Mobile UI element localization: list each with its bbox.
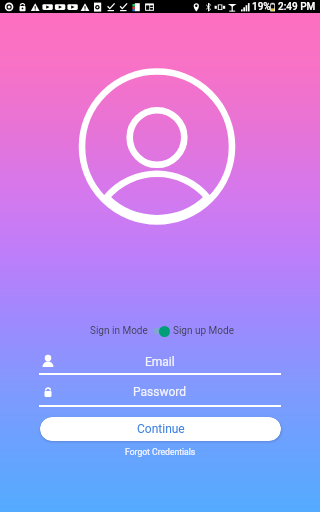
staticText: Email (145, 355, 175, 369)
other: Profile avatar (79, 69, 235, 225)
button[interactable]: Sign up mode toggle (152, 324, 172, 338)
staticText: Continue (137, 422, 185, 436)
staticText: Sign in Mode (90, 325, 148, 337)
other: Email (42, 354, 54, 366)
staticText: Password (133, 385, 187, 399)
button[interactable]: Continue (40, 417, 281, 441)
staticText: 2:49 PM (278, 1, 316, 13)
staticText: Sign up Mode (173, 325, 234, 337)
button[interactable]: Password (0, 384, 320, 410)
staticText: Forgot Credentials (125, 447, 196, 457)
button[interactable]: Email (0, 352, 320, 378)
other: Password (42, 387, 54, 399)
staticText: 19% (252, 1, 271, 13)
button[interactable]: Forgot Credentials (0, 445, 320, 459)
